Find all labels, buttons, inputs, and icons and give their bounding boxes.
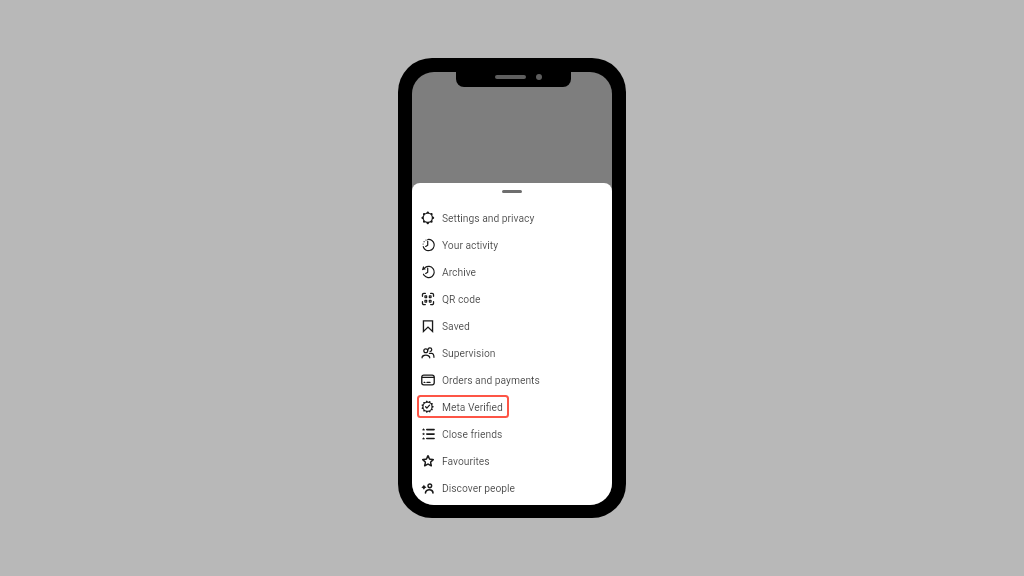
button[interactable]: Discover people (412, 474, 612, 501)
staticText: Supervision (442, 347, 496, 359)
button[interactable]: Drag handle (502, 190, 522, 193)
staticText: Meta Verified (442, 401, 503, 413)
staticText: QR code (442, 293, 481, 305)
staticText: Saved (442, 320, 470, 332)
button[interactable]: QR code (412, 285, 612, 312)
staticText: Settings and privacy (442, 212, 535, 224)
button[interactable]: Settings and privacy (412, 204, 612, 231)
staticText: Your activity (442, 239, 499, 251)
staticText: Discover people (442, 482, 516, 494)
button[interactable]: Close friends (412, 420, 612, 447)
staticText: Favourites (442, 455, 490, 467)
button[interactable]: Orders and payments (412, 366, 612, 393)
button[interactable]: Archive (412, 258, 612, 285)
button[interactable]: Saved (412, 312, 612, 339)
staticText: Archive (442, 266, 477, 278)
button[interactable]: Your activity (412, 231, 612, 258)
staticText: Close friends (442, 428, 503, 440)
staticText: Orders and payments (442, 374, 540, 386)
button[interactable]: Favourites (412, 447, 612, 474)
button[interactable]: Meta Verified (412, 393, 612, 420)
button[interactable]: Supervision (412, 339, 612, 366)
